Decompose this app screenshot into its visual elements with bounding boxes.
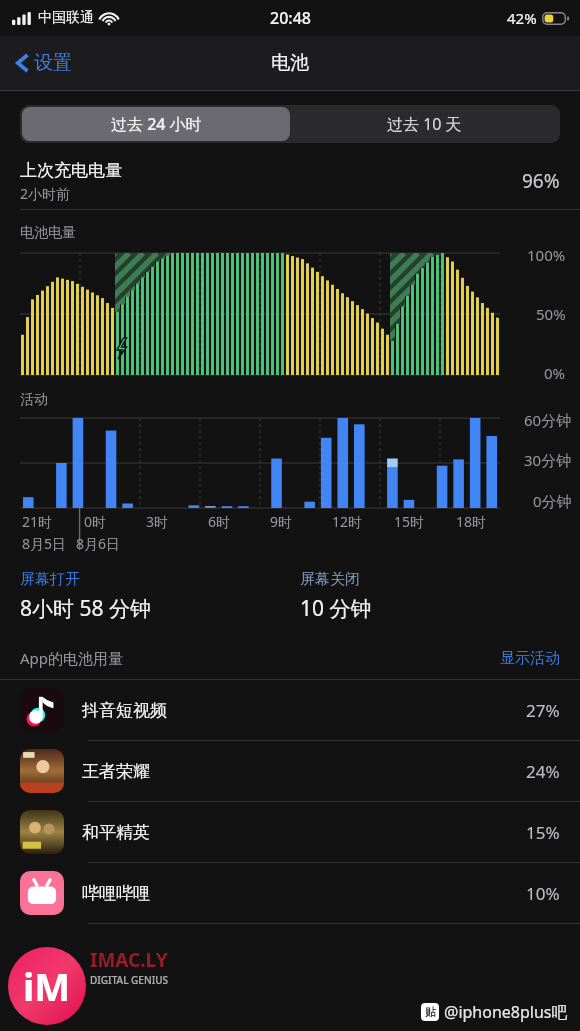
- staticText: 电池: [271, 51, 309, 75]
- button[interactable]: 屏幕关闭: [300, 570, 580, 623]
- button[interactable]: 和平精英: [0, 802, 580, 863]
- staticText: 过去 10 天: [387, 113, 462, 135]
- staticText: iM: [23, 960, 71, 1012]
- staticText: 0分钟: [533, 491, 572, 511]
- staticText: 15时: [394, 512, 425, 531]
- staticText: 哔哩哔哩: [82, 883, 150, 904]
- staticText: 6时: [208, 512, 231, 531]
- staticText: DIGITAL GENIUS: [90, 973, 169, 987]
- staticText: App的电池用量: [20, 648, 124, 668]
- button[interactable]: 过去 10 天: [290, 107, 558, 141]
- staticText: 中国联通: [38, 9, 94, 27]
- staticText: 21时: [22, 512, 53, 531]
- staticText: IMAC.LY: [90, 947, 168, 973]
- staticText: 100%: [527, 245, 566, 265]
- staticText: 2小时前: [20, 184, 71, 203]
- staticText: 18时: [456, 512, 487, 531]
- staticText: 抖音短视频: [82, 700, 167, 721]
- staticText: 8月6日: [76, 534, 121, 553]
- staticText: 显示活动: [500, 649, 560, 668]
- staticText: 电池电量: [20, 224, 76, 242]
- staticText: 8小时 58 分钟: [20, 594, 151, 623]
- button[interactable]: 显示活动: [480, 644, 580, 673]
- button[interactable]: 哔哩哔哩: [0, 863, 580, 924]
- staticText: 王者荣耀: [82, 761, 150, 782]
- staticText: 活动: [20, 391, 48, 409]
- staticText: 贴: [425, 1005, 436, 1019]
- staticText: 0时: [84, 512, 107, 531]
- button[interactable]: 设置: [10, 43, 78, 83]
- staticText: 20:48: [270, 7, 311, 29]
- staticText: 10%: [526, 882, 560, 905]
- staticText: 42%: [507, 8, 537, 28]
- button[interactable]: 屏幕打开: [20, 570, 300, 623]
- staticText: 12时: [332, 512, 363, 531]
- staticText: 设置: [34, 51, 72, 75]
- staticText: 屏幕关闭: [300, 570, 360, 589]
- staticText: 0%: [544, 363, 566, 383]
- button[interactable]: 王者荣耀: [0, 741, 580, 802]
- staticText: @iphone8plus吧: [444, 1001, 568, 1023]
- staticText: 50%: [536, 304, 566, 324]
- staticText: 屏幕打开: [20, 570, 80, 589]
- staticText: 8月5日: [22, 534, 67, 553]
- staticText: 15%: [526, 821, 560, 844]
- staticText: 60分钟: [524, 410, 572, 430]
- staticText: 过去 24 小时: [111, 113, 202, 135]
- staticText: 30分钟: [524, 450, 572, 470]
- button[interactable]: 抖音短视频: [0, 680, 580, 741]
- staticText: 24%: [526, 760, 560, 783]
- button[interactable]: 过去 24 小时: [22, 107, 290, 141]
- staticText: 和平精英: [82, 822, 150, 843]
- button[interactable]: 上次充电电量: [0, 153, 580, 209]
- staticText: 3时: [146, 512, 169, 531]
- staticText: 9时: [270, 512, 293, 531]
- staticText: 10 分钟: [300, 594, 372, 623]
- staticText: 上次充电电量: [20, 160, 122, 181]
- staticText: 96%: [522, 168, 560, 194]
- staticText: 27%: [526, 699, 560, 722]
